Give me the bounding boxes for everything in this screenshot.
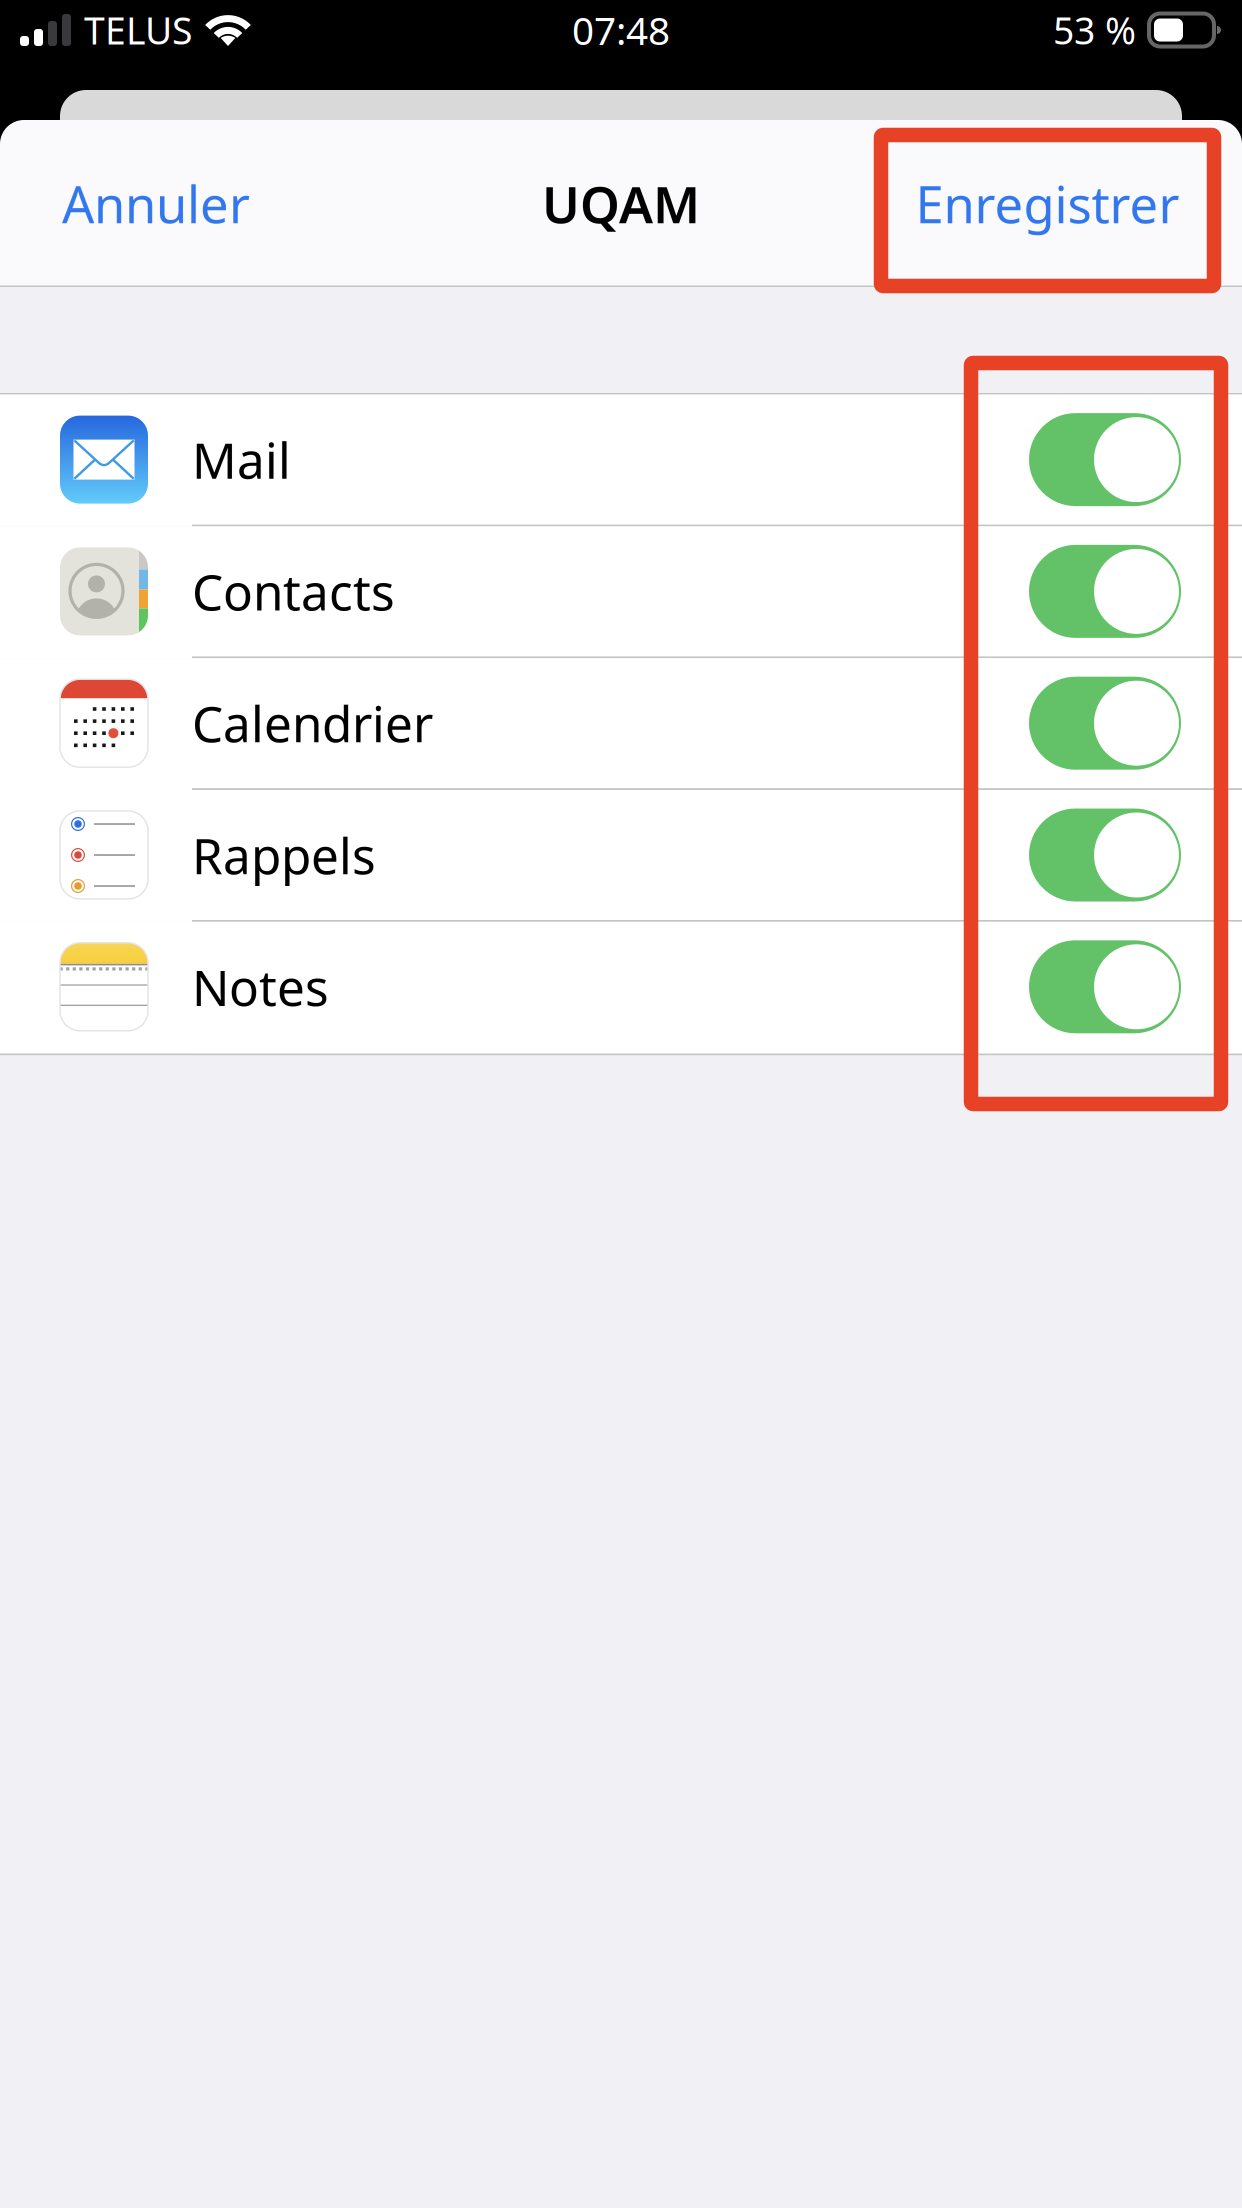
button[interactable]: Annuler [62, 120, 284, 286]
staticText: Calendrier [192, 690, 433, 756]
staticText: 53 % [1053, 5, 1136, 55]
button[interactable]: Contacts [0, 526, 1242, 658]
staticText: Mail [192, 427, 291, 492]
staticText: 07:48 [572, 4, 670, 56]
button[interactable]: Notes [0, 922, 1242, 1054]
button[interactable]: Rappels [0, 790, 1242, 922]
staticText: Rappels [192, 822, 376, 888]
button[interactable]: Contacts, activé [1029, 545, 1181, 638]
staticText: TELUS [84, 5, 192, 55]
button[interactable]: Notes, activé [1029, 940, 1181, 1033]
staticText: UQAM [542, 170, 700, 237]
staticText: Contacts [192, 559, 395, 624]
button[interactable]: Rappels, activé [1029, 808, 1181, 901]
staticText: Enregistrer [915, 170, 1179, 237]
button[interactable]: Calendrier [0, 658, 1242, 790]
button[interactable]: Mail, activé [1029, 413, 1181, 506]
staticText: Annuler [62, 170, 250, 237]
button[interactable]: Mail [0, 395, 1242, 526]
button[interactable]: Calendrier, activé [1029, 677, 1181, 770]
staticText: Notes [192, 954, 329, 1019]
button[interactable]: Enregistrer [881, 120, 1214, 287]
